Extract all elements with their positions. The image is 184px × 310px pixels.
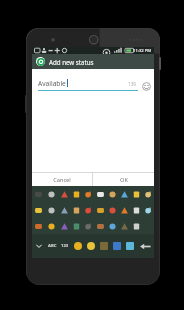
staticText: Add new status [49, 58, 94, 66]
button[interactable]: Emoji [130, 218, 142, 234]
button[interactable]: Emoji [130, 202, 142, 218]
button[interactable]: Emoji category 3 [97, 234, 110, 258]
button[interactable]: Cancel [32, 173, 92, 186]
button[interactable]: Emoji [70, 202, 82, 218]
button[interactable]: Emoji [142, 186, 154, 202]
button[interactable]: 123 [59, 234, 71, 258]
button[interactable]: ABC [46, 234, 59, 258]
button[interactable]: Emoji [94, 202, 106, 218]
staticText: 11:32 PM [133, 48, 152, 54]
button[interactable]: Emoji [94, 186, 106, 202]
button[interactable]: OK [93, 173, 154, 186]
button[interactable]: Emoji [130, 186, 142, 202]
button[interactable]: Add new status [32, 54, 154, 69]
staticText: OK [120, 176, 128, 184]
button[interactable]: Emoji [58, 218, 70, 234]
button[interactable]: Emoji [70, 186, 82, 202]
button[interactable]: Emoji [118, 202, 130, 218]
button[interactable]: Emoji [82, 218, 94, 234]
button[interactable]: Emoji [58, 186, 70, 202]
button[interactable]: Emoji [32, 202, 45, 218]
button[interactable]: Backspace [136, 234, 154, 258]
button[interactable]: Emoji [32, 218, 45, 234]
button[interactable]: Insert emoji [141, 81, 151, 91]
button[interactable]: Emoji [118, 186, 130, 202]
button[interactable]: Emoji [106, 218, 118, 234]
button[interactable]: Emoji [106, 202, 118, 218]
button[interactable]: Emoji [82, 202, 94, 218]
staticText: Cancel [53, 176, 71, 184]
button[interactable]: Emoji [94, 218, 106, 234]
button[interactable]: Emoji [70, 218, 82, 234]
button[interactable]: Emoji [45, 202, 58, 218]
staticText: ABC [48, 243, 57, 249]
button[interactable]: Emoji category 4 [110, 234, 123, 258]
button[interactable]: Emoji [106, 186, 118, 202]
staticText: Available [38, 79, 66, 88]
staticText: 139 [128, 81, 136, 87]
button[interactable]: Emoji [32, 186, 45, 202]
staticText: 123 [61, 243, 69, 249]
button[interactable]: Emoji category 5 [123, 234, 136, 258]
button[interactable]: Emoji category 1 [71, 234, 84, 258]
button[interactable]: Hide keyboard [32, 234, 46, 258]
button[interactable]: Emoji category 2 [84, 234, 97, 258]
button[interactable]: Emoji [45, 186, 58, 202]
button[interactable]: Emoji [142, 202, 154, 218]
button[interactable]: Emoji [118, 218, 130, 234]
button[interactable]: Emoji [82, 186, 94, 202]
button[interactable]: Emoji [45, 218, 58, 234]
button[interactable]: Emoji [58, 202, 70, 218]
